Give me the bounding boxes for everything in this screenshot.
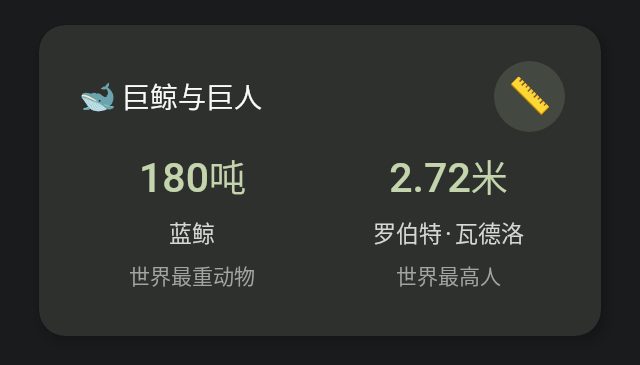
button[interactable]: 🐋 <box>39 25 601 336</box>
button[interactable]: 2.72米 <box>320 149 576 290</box>
staticText: 世界最重动物 <box>129 260 255 290</box>
staticText: 🐋 <box>79 79 117 114</box>
staticText: 2.72米 <box>389 149 508 203</box>
staticText: 罗伯特·瓦德洛 <box>373 215 524 248</box>
button[interactable]: 测量单位 <box>494 61 565 132</box>
staticText: 巨鲸与巨人 <box>122 76 263 117</box>
button[interactable]: 180吨 <box>64 149 320 290</box>
staticText: 世界最高人 <box>396 260 501 290</box>
staticText: 📏 <box>508 76 552 117</box>
staticText: 180吨 <box>139 149 246 203</box>
staticText: 蓝鲸 <box>169 215 215 248</box>
